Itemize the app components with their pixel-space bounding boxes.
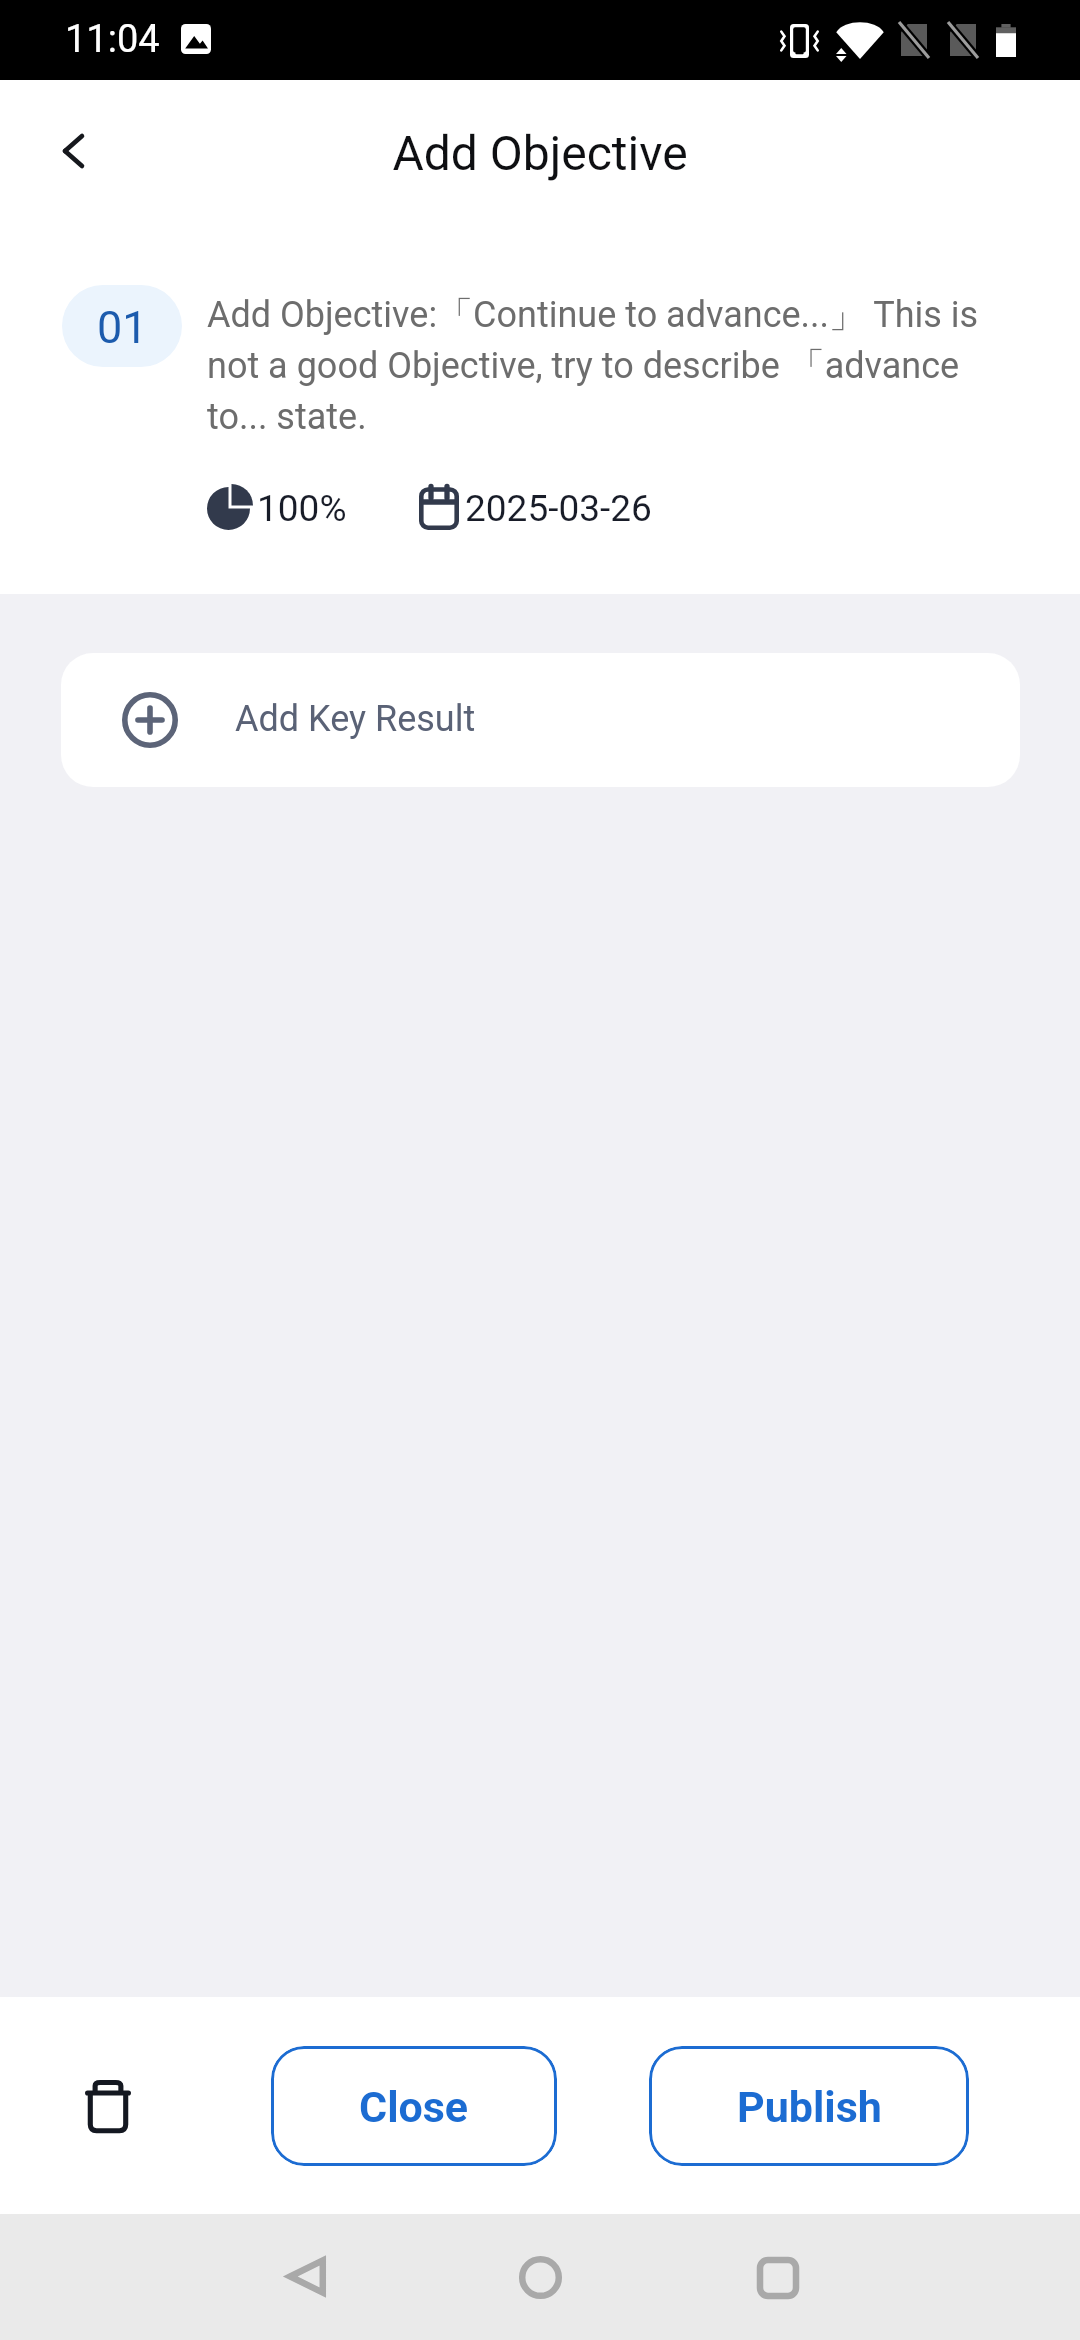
button[interactable]: Close [271,2046,557,2166]
staticText: 2025-03-26 [465,487,652,530]
staticText: Close [359,2082,469,2132]
staticText: 01 [97,301,148,354]
staticText: 100% [257,487,347,530]
staticText: 11:04 [65,17,160,62]
button[interactable]: Delete [62,2060,154,2152]
button[interactable]: Publish [649,2046,969,2166]
button[interactable]: Recents [738,2238,818,2318]
button[interactable]: Home [500,2237,580,2317]
button[interactable]: Back [266,2236,346,2316]
button[interactable]: Back [25,103,121,199]
staticText: Add Objective:「Continue to advance...」 T… [207,288,1022,439]
button[interactable]: Add Key Result [61,653,1020,787]
staticText: Publish [737,2082,882,2132]
staticText: Add Key Result [235,698,476,740]
staticText: Add Objective [392,125,688,181]
